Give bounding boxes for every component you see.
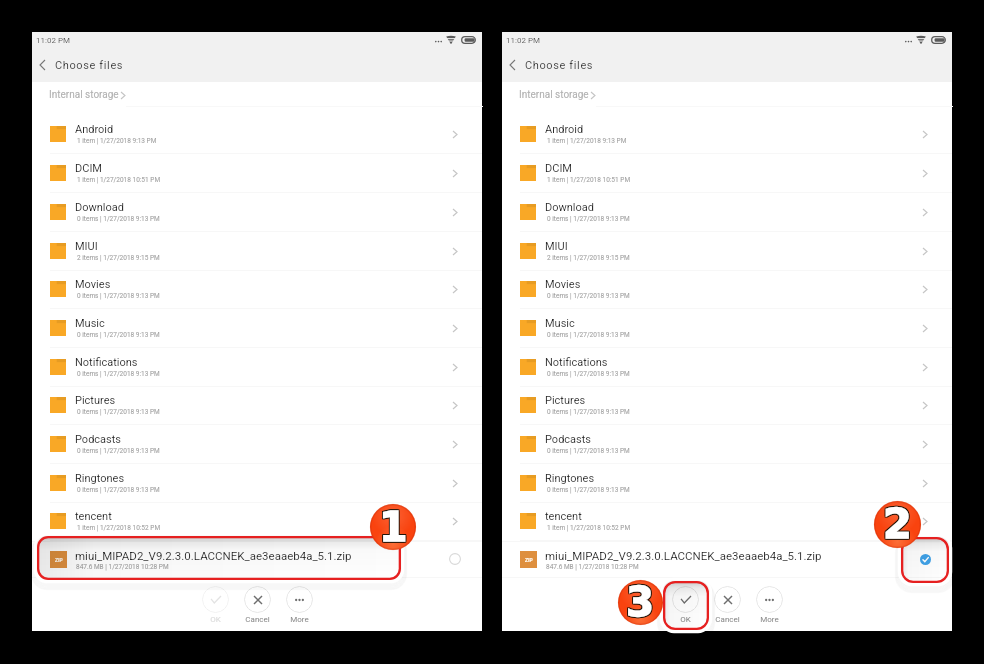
staticText: Movies [75,278,111,291]
staticText: 1 [379,502,408,548]
button[interactable]: Android [502,115,952,154]
staticText: 3 [627,580,656,625]
staticText: Android [545,123,584,136]
button[interactable]: Notifications [32,348,482,387]
staticText: 2 [883,500,912,547]
staticText: 2 [882,499,911,546]
button[interactable]: Download [32,193,482,232]
staticText: DCIM [545,162,572,175]
staticText: 0 items | 1/27/2018 9:13 PM [77,331,160,339]
staticText: 1 [379,504,408,550]
button[interactable]: ZIP [502,541,952,578]
button[interactable]: Pictures [502,386,952,425]
staticText: DCIM [75,162,102,175]
staticText: tencent [75,510,112,523]
staticText: 1 item | 1/27/2018 10:51 PM [547,176,631,184]
staticText: OK [680,615,691,624]
staticText: Pictures [545,394,586,407]
button[interactable]: DCIM [502,154,952,193]
staticText: 847.6 MB | 1/27/2018 10:28 PM [546,563,639,571]
staticText: ZIP [525,557,533,563]
staticText: 3 [625,579,654,624]
staticText: 3 [625,580,654,625]
button[interactable]: Select file [443,547,467,571]
staticText: 2 [883,499,912,546]
staticText: More [760,615,779,624]
staticText: Movies [545,278,581,291]
button[interactable]: Music [32,309,482,348]
staticText: tencent [545,510,582,523]
staticText: 0 items | 1/27/2018 9:13 PM [547,292,630,300]
button[interactable]: Notifications [502,348,952,387]
staticText: Music [545,317,575,330]
staticText: 3 [626,579,655,624]
button[interactable]: Back [501,54,523,76]
staticText: 11:02 PM [36,36,70,45]
button[interactable]: Ringtones [502,464,952,503]
button[interactable]: Select file [913,547,937,571]
staticText: Cancel [245,615,270,624]
staticText: 3 [627,579,656,624]
staticText: 1 item | 1/27/2018 10:51 PM [77,176,161,184]
staticText: 2 items | 1/27/2018 9:15 PM [77,254,160,262]
staticText: 0 items | 1/27/2018 9:13 PM [77,447,160,455]
staticText: 2 [884,499,913,546]
staticText: MIUI [545,240,568,253]
button[interactable]: OK [668,586,702,624]
staticText: 3 [626,578,655,623]
staticText: 0 items | 1/27/2018 9:13 PM [77,215,160,223]
staticText: 2 [884,501,913,548]
button[interactable]: Music [502,309,952,348]
staticText: miui_MIPAD2_V9.2.3.0.LACCNEK_ae3eaaeb4a_… [75,549,352,562]
button[interactable]: Internal storage [519,84,595,106]
button[interactable]: Cancel [710,586,744,624]
staticText: Notifications [545,356,608,369]
staticText: 1 [380,503,409,549]
staticText: OK [210,615,221,624]
staticText: 847.6 MB | 1/27/2018 10:28 PM [76,563,169,571]
staticText: 1 [380,502,409,548]
staticText: More [290,615,309,624]
button[interactable]: Podcasts [32,425,482,464]
staticText: Notifications [75,356,138,369]
staticText: 2 items | 1/27/2018 9:15 PM [547,254,630,262]
button[interactable]: tencent [502,502,952,541]
button[interactable]: MIUI [32,232,482,271]
staticText: 1 [380,504,409,550]
staticText: MIUI [75,240,98,253]
button[interactable]: ZIP [32,541,482,578]
staticText: 0 items | 1/27/2018 9:13 PM [77,292,160,300]
button[interactable]: Android [32,115,482,154]
button[interactable]: Podcasts [502,425,952,464]
button[interactable]: Back [31,54,53,76]
button[interactable]: Download [502,193,952,232]
button[interactable]: tencent [32,502,482,541]
staticText: 0 items | 1/27/2018 9:13 PM [547,370,630,378]
button[interactable]: Internal storage [49,84,125,106]
button[interactable]: Movies [502,270,952,309]
staticText: 2 [882,500,911,547]
staticText: Download [75,201,124,214]
staticText: 3 [627,578,656,623]
staticText: 0 items | 1/27/2018 9:13 PM [77,486,160,494]
button[interactable]: Ringtones [32,464,482,503]
staticText: 1 [378,503,407,549]
button[interactable]: Movies [32,270,482,309]
staticText: Choose files [525,59,594,72]
staticText: 0 items | 1/27/2018 9:13 PM [547,331,630,339]
staticText: 2 [883,501,912,548]
button[interactable]: Pictures [32,386,482,425]
staticText: 1 item | 1/27/2018 9:13 PM [77,137,157,145]
button[interactable]: MIUI [502,232,952,271]
staticText: miui_MIPAD2_V9.2.3.0.LACCNEK_ae3eaaeb4a_… [545,549,822,562]
staticText: Podcasts [545,433,592,446]
staticText: Ringtones [545,472,595,485]
button[interactable]: More [282,586,316,624]
button[interactable]: DCIM [32,154,482,193]
staticText: Choose files [55,59,124,72]
staticText: Download [545,201,594,214]
staticText: 3 [626,580,655,625]
button[interactable]: More [752,586,786,624]
button[interactable]: OK [198,586,232,624]
button[interactable]: Cancel [240,586,274,624]
